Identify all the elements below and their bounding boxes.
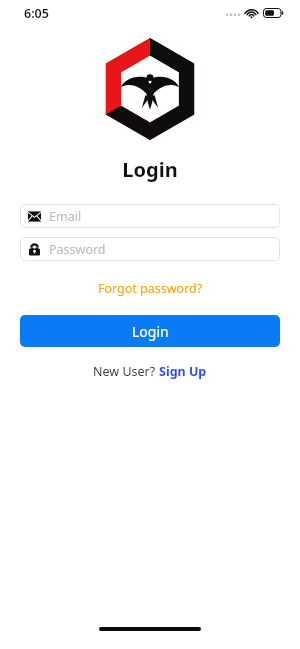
button[interactable]: Login [20,315,280,347]
button[interactable]: Password [20,237,280,261]
staticText: Login [132,322,169,341]
staticText: New User? [93,363,159,380]
button[interactable]: Forgot password? [92,278,209,299]
staticText: Sign Up [159,363,207,380]
staticText: Login [0,156,300,183]
staticText: Email [49,208,82,225]
staticText: 6:05 [24,5,49,22]
staticText: Password [49,241,106,258]
staticText: Forgot password? [98,280,203,297]
button[interactable]: Sign Up [159,363,207,380]
button[interactable]: Email [20,204,280,228]
